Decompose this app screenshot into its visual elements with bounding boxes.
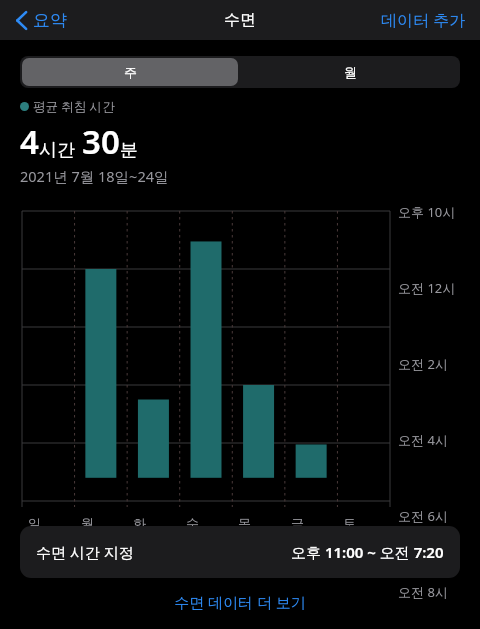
staticText: 평균 취침 시간 (33, 98, 115, 115)
staticText: 30 (82, 119, 120, 164)
staticText: 수면 (224, 10, 256, 30)
staticText: 오후 11:00 ~ 오전 7:20 (291, 542, 444, 562)
staticText: 오전 4시 (398, 431, 448, 449)
staticText: 수 (186, 515, 199, 531)
button[interactable]: 수면 시간 지정 (20, 526, 460, 578)
staticText: 요약 (33, 10, 67, 31)
staticText: 일 (28, 515, 41, 531)
staticText: 2021년 7월 18일~24일 (20, 166, 169, 186)
staticText: 오후 10시 (398, 203, 456, 221)
staticText: 주 (124, 64, 137, 80)
staticText: 분 (120, 139, 138, 162)
staticText: 오전 6시 (398, 507, 448, 525)
staticText: 화 (133, 515, 146, 531)
staticText: 토 (343, 515, 356, 531)
button[interactable]: 주 (22, 58, 238, 86)
staticText: 데이터 추가 (381, 9, 466, 31)
staticText: 시간 (39, 139, 75, 162)
staticText: 수면 시간 지정 (36, 542, 134, 562)
button[interactable]: 데이터 추가 (377, 5, 470, 35)
staticText: 수면 데이터 더 보기 (174, 592, 306, 612)
staticText: 월 (344, 64, 357, 80)
staticText: 오전 12시 (398, 279, 456, 297)
button[interactable]: 요약 (12, 6, 71, 35)
button[interactable]: 월 (240, 56, 460, 88)
staticText: 오전 8시 (398, 583, 448, 601)
staticText: 금 (291, 515, 304, 531)
staticText: 오전 2시 (398, 355, 448, 373)
staticText: 월 (81, 515, 94, 531)
staticText: 4 (20, 119, 39, 164)
staticText: 목 (238, 515, 251, 531)
